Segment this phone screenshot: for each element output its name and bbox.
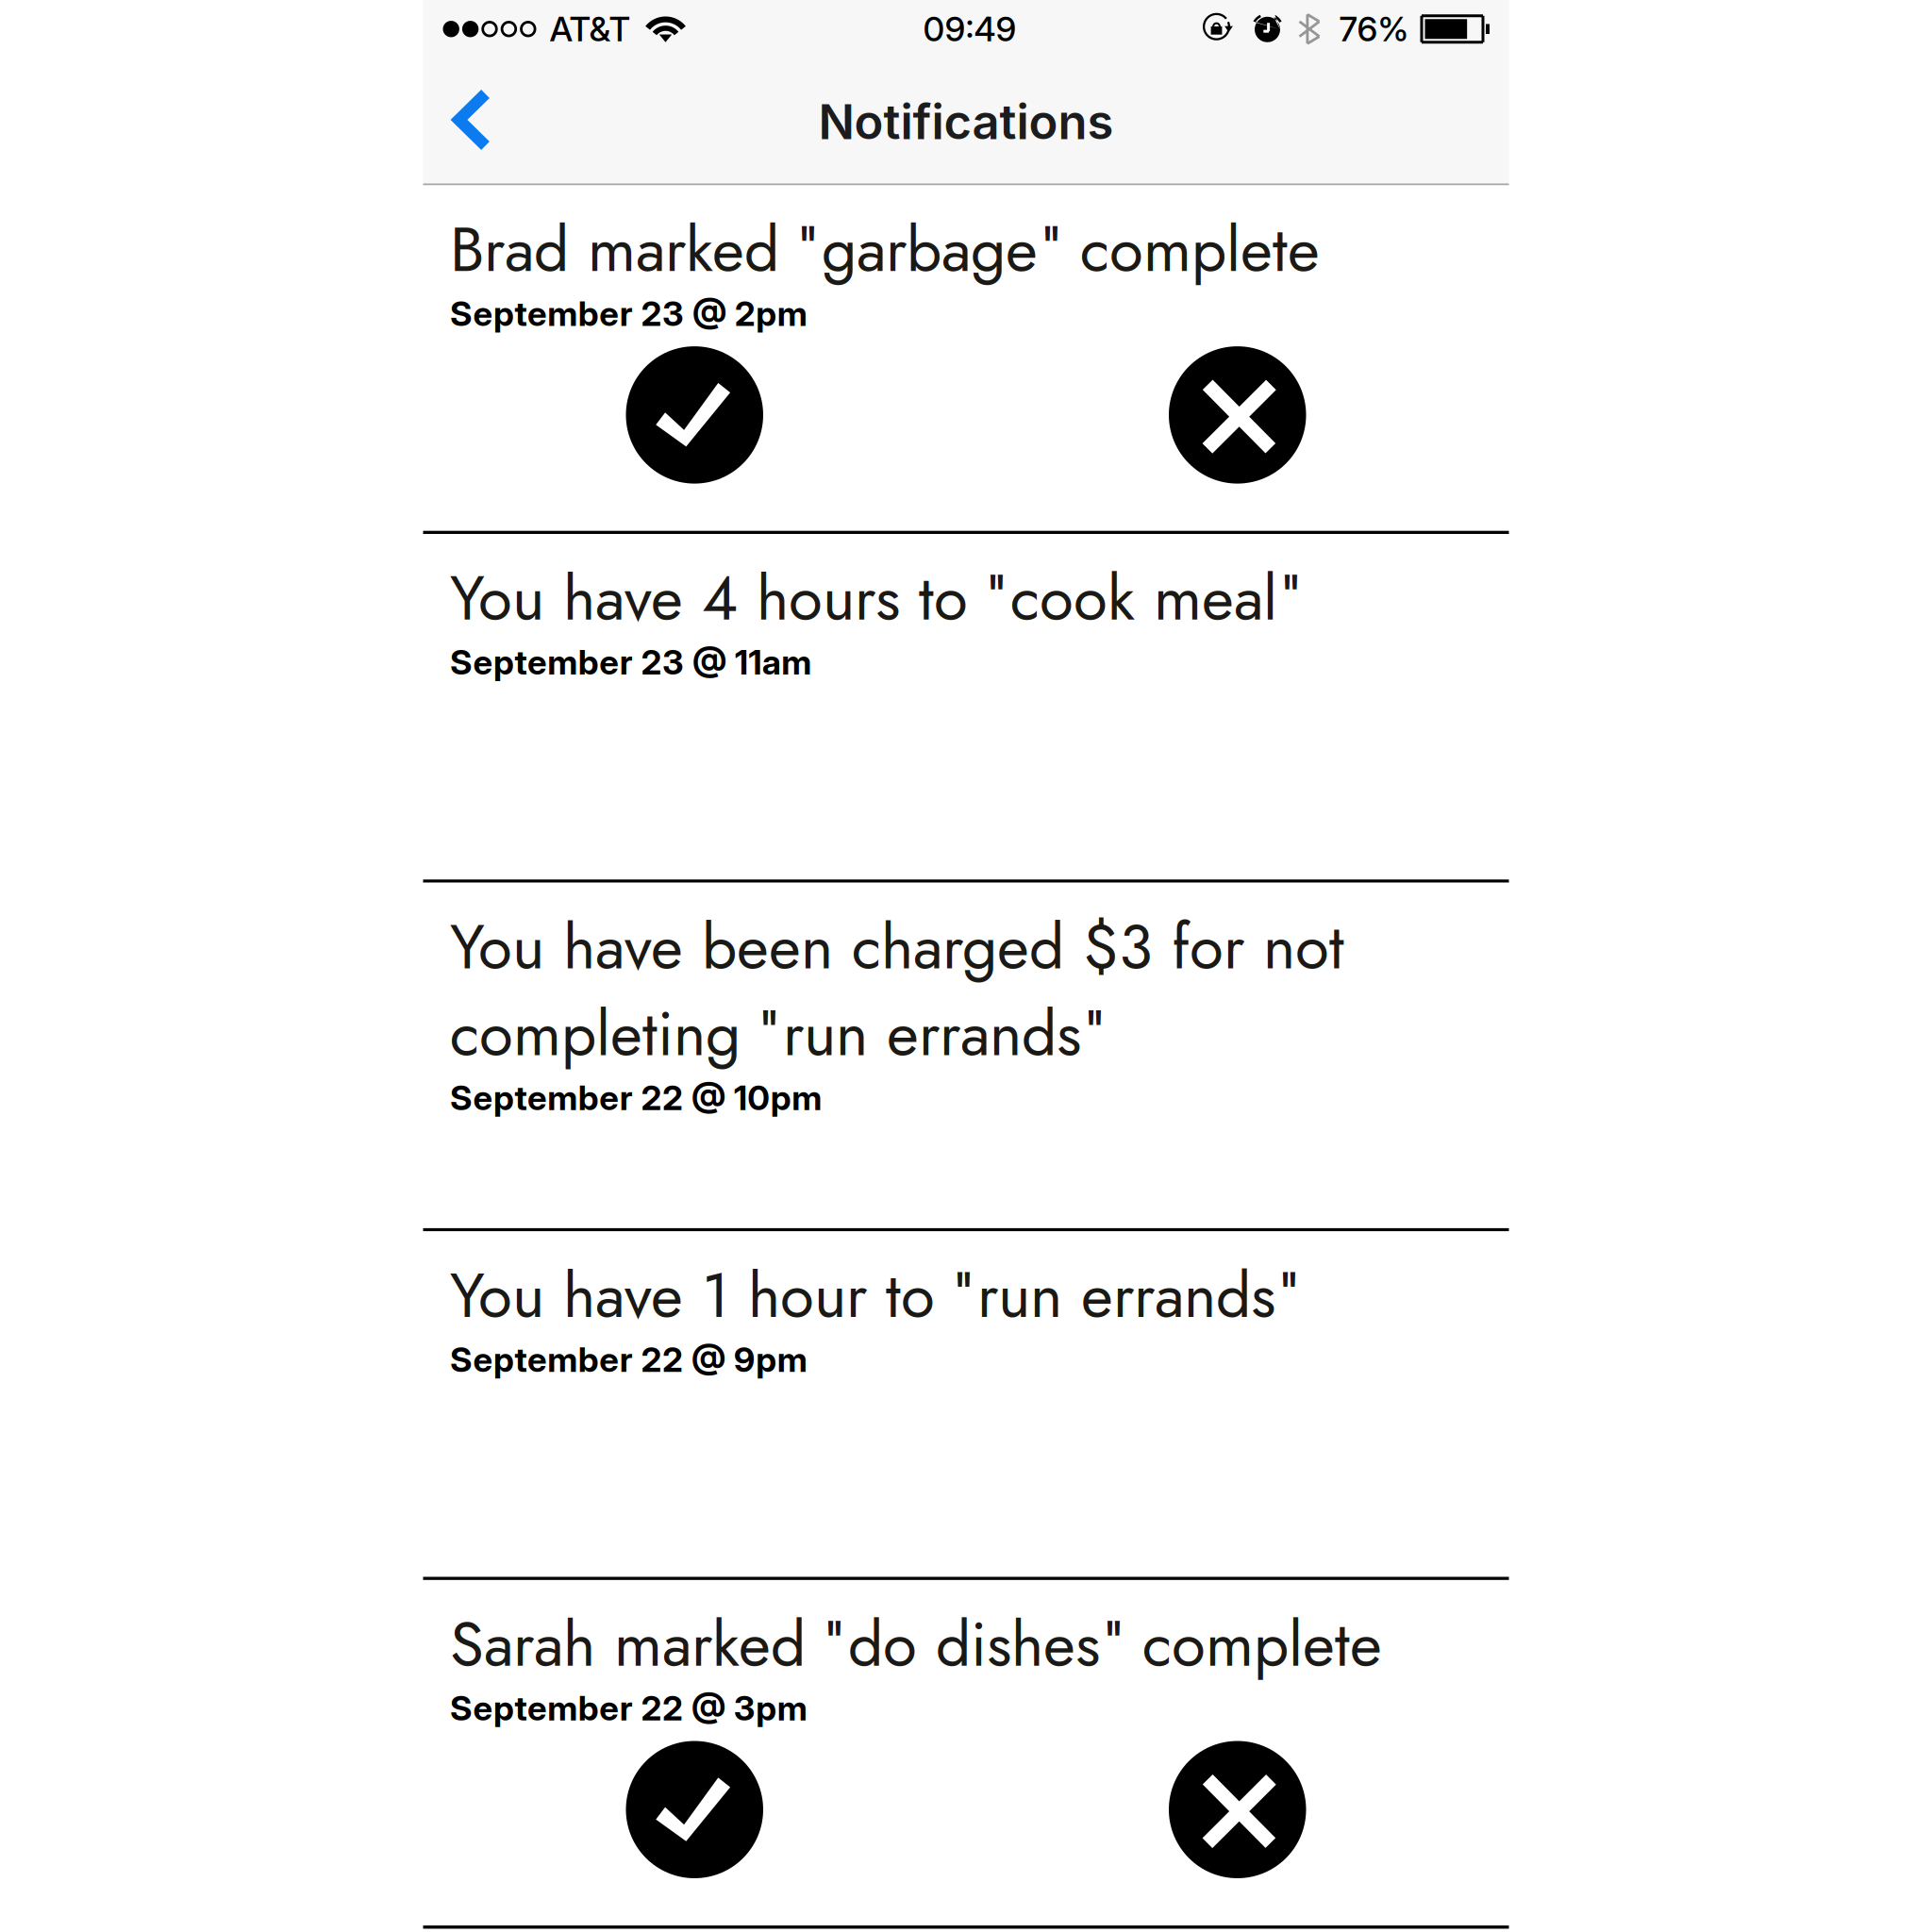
staticText: 09:49 [923,8,1016,50]
staticText: September 23 @ 11am [450,642,811,683]
button[interactable]: Back [423,58,521,185]
button[interactable]: Mark complete [626,346,763,484]
staticText: September 23 @ 2pm [450,293,807,334]
staticText: September 22 @ 3pm [450,1688,807,1729]
button[interactable]: Mark complete [626,1741,763,1878]
staticText: 76% [1339,8,1409,50]
button[interactable]: Dismiss [1169,346,1306,484]
staticText: You have 4 hours to " cook meal " [450,555,1301,642]
staticText: Sarah marked " do dishes " complete [450,1601,1382,1688]
staticText: September 22 @ 10pm [450,1077,822,1118]
staticText: AT&T [550,8,631,50]
staticText: You have been charged $3 for not complet… [450,903,1344,1077]
staticText: September 22 @ 9pm [450,1339,807,1380]
staticText: You have 1 hour to " run errands " [450,1252,1299,1339]
button[interactable]: Dismiss [1169,1741,1306,1878]
staticText: Notifications [818,93,1114,151]
staticText: Brad marked " garbage " complete [450,206,1320,293]
